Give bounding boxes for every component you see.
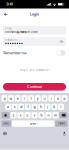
button[interactable]: Forgot your password?: [0, 67, 69, 73]
button[interactable]: d: [18, 104, 24, 110]
staticText: x: [19, 113, 21, 117]
staticText: t: [31, 96, 32, 100]
staticText: j: [47, 105, 48, 109]
staticText: Continue: [27, 85, 42, 89]
staticText: d: [20, 105, 22, 109]
staticText: Remember me: [3, 51, 26, 55]
button[interactable]: z: [10, 112, 17, 118]
button[interactable]: g: [32, 104, 37, 110]
button[interactable]: v: [31, 112, 38, 118]
staticText: w: [10, 96, 13, 100]
button[interactable]: o: [55, 95, 61, 102]
staticText: space: [30, 122, 37, 125]
button[interactable]: Continue: [0, 83, 69, 91]
staticText: g: [33, 105, 35, 109]
button[interactable]: e: [15, 95, 21, 102]
staticText: m: [54, 113, 57, 117]
button[interactable]: x: [17, 112, 24, 118]
staticText: Forgot your password?: [19, 68, 49, 71]
staticText: i: [51, 96, 52, 100]
button[interactable]: u: [42, 95, 47, 102]
staticText: a: [7, 105, 9, 109]
button[interactable]: w: [8, 95, 14, 102]
staticText: christina@example.com: [5, 30, 37, 34]
staticText: Email: [5, 27, 12, 30]
staticText: e: [17, 96, 19, 100]
button[interactable]: Password: [0, 37, 69, 46]
button[interactable]: f: [25, 104, 31, 110]
button[interactable]: h: [38, 104, 44, 110]
staticText: h: [40, 105, 42, 109]
staticText: s: [14, 105, 16, 109]
button[interactable]: i: [48, 95, 54, 102]
button[interactable]: Next keyboard: [3, 132, 7, 135]
button[interactable]: k: [51, 104, 57, 110]
button[interactable]: space: [12, 120, 54, 127]
button[interactable]: c: [24, 112, 31, 118]
staticText: c: [26, 113, 28, 117]
staticText: Login: [30, 12, 39, 16]
button[interactable]: m: [52, 112, 59, 118]
staticText: u: [43, 96, 45, 100]
button[interactable]: Back: [0, 8, 12, 20]
button[interactable]: p: [62, 95, 67, 102]
button[interactable]: l: [58, 104, 64, 110]
button[interactable]: Remember me: [56, 50, 65, 56]
button[interactable]: r: [21, 95, 27, 102]
staticText: 9:41: [6, 2, 12, 6]
staticText: o: [57, 96, 59, 100]
staticText: p: [64, 96, 66, 100]
button[interactable]: a: [5, 104, 11, 110]
staticText: b: [40, 113, 42, 117]
staticText: l: [60, 105, 61, 109]
button[interactable]: j: [45, 104, 51, 110]
button[interactable]: q: [1, 95, 7, 102]
staticText: k: [53, 105, 55, 109]
staticText: v: [33, 113, 35, 117]
staticText: Password: [5, 39, 17, 42]
button[interactable]: n: [45, 112, 52, 118]
staticText: return: [58, 122, 64, 125]
button[interactable]: [59, 112, 67, 118]
button[interactable]: s: [12, 104, 18, 110]
button[interactable]: Email: [0, 26, 69, 35]
button[interactable]: Dictate: [63, 132, 66, 135]
button[interactable]: ABC: [1, 120, 11, 127]
staticText: f: [27, 105, 28, 109]
staticText: z: [12, 113, 14, 117]
button[interactable]: y: [35, 95, 41, 102]
button[interactable]: t: [28, 95, 34, 102]
staticText: y: [37, 96, 39, 100]
staticText: r: [24, 96, 25, 100]
staticText: n: [47, 113, 49, 117]
button[interactable]: return: [55, 120, 67, 127]
button[interactable]: b: [38, 112, 45, 118]
staticText: ABC: [3, 122, 9, 125]
staticText: q: [3, 96, 5, 100]
button[interactable]: [1, 112, 10, 118]
